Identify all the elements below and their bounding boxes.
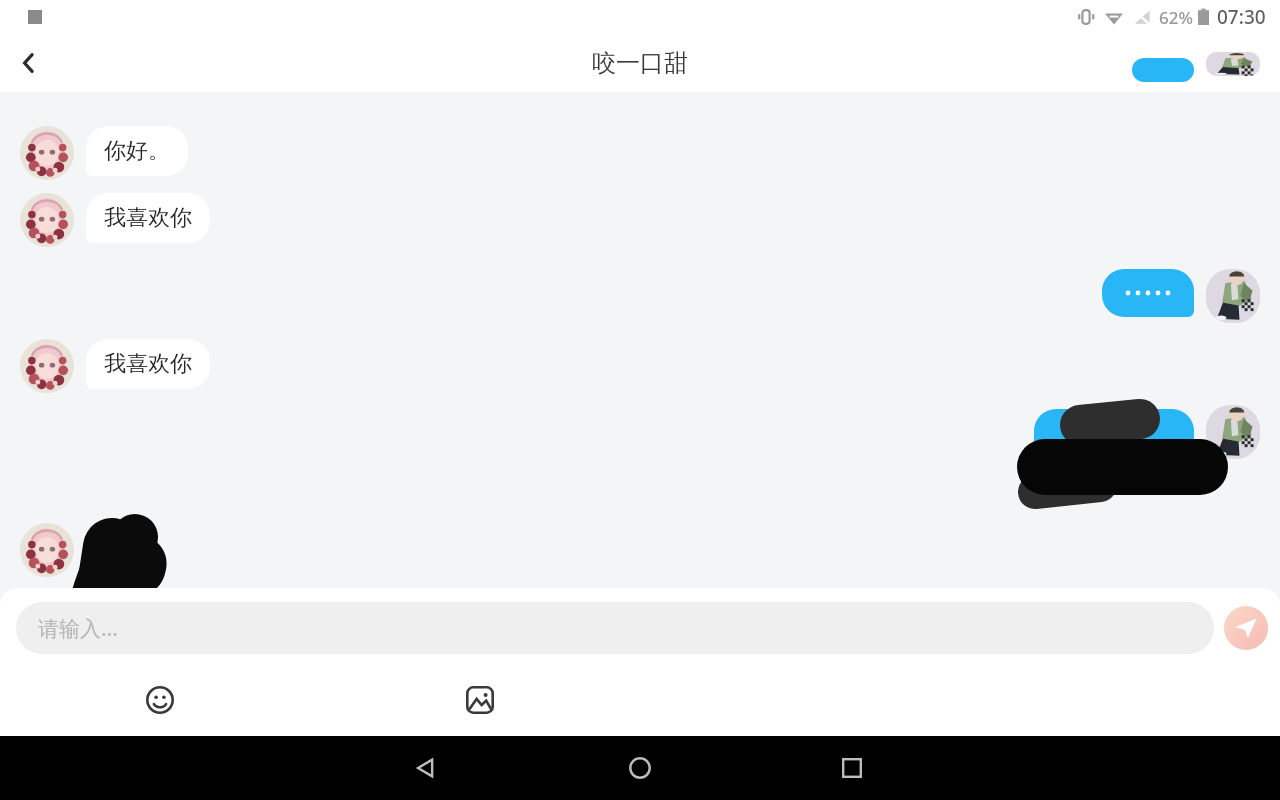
button[interactable]: 你好。 bbox=[86, 126, 188, 176]
staticText: 我喜欢你 bbox=[104, 350, 192, 378]
button[interactable]: Emoji bbox=[134, 674, 186, 726]
button[interactable] bbox=[1102, 269, 1194, 317]
button[interactable]: Send bbox=[1224, 606, 1268, 650]
staticText: 07:30 bbox=[1217, 4, 1266, 30]
button[interactable]: Picture bbox=[454, 674, 506, 726]
staticText: 你好。 bbox=[104, 137, 170, 165]
staticText: 请输入... bbox=[38, 614, 118, 643]
staticText: 62% bbox=[1159, 6, 1193, 29]
button[interactable]: More options bbox=[1222, 34, 1280, 92]
button[interactable]: Back bbox=[398, 740, 454, 796]
staticText: 咬一口甜 bbox=[592, 48, 688, 78]
button[interactable]: Home bbox=[612, 740, 668, 796]
button[interactable]: Recent apps bbox=[824, 740, 880, 796]
button[interactable]: 请输入... bbox=[16, 602, 1214, 654]
button[interactable]: 我喜欢你 bbox=[86, 193, 210, 243]
button[interactable] bbox=[1034, 409, 1194, 471]
button[interactable]: 我喜欢你 bbox=[86, 339, 210, 389]
button[interactable]: Back bbox=[0, 34, 58, 92]
staticText: 我喜欢你 bbox=[104, 204, 192, 232]
